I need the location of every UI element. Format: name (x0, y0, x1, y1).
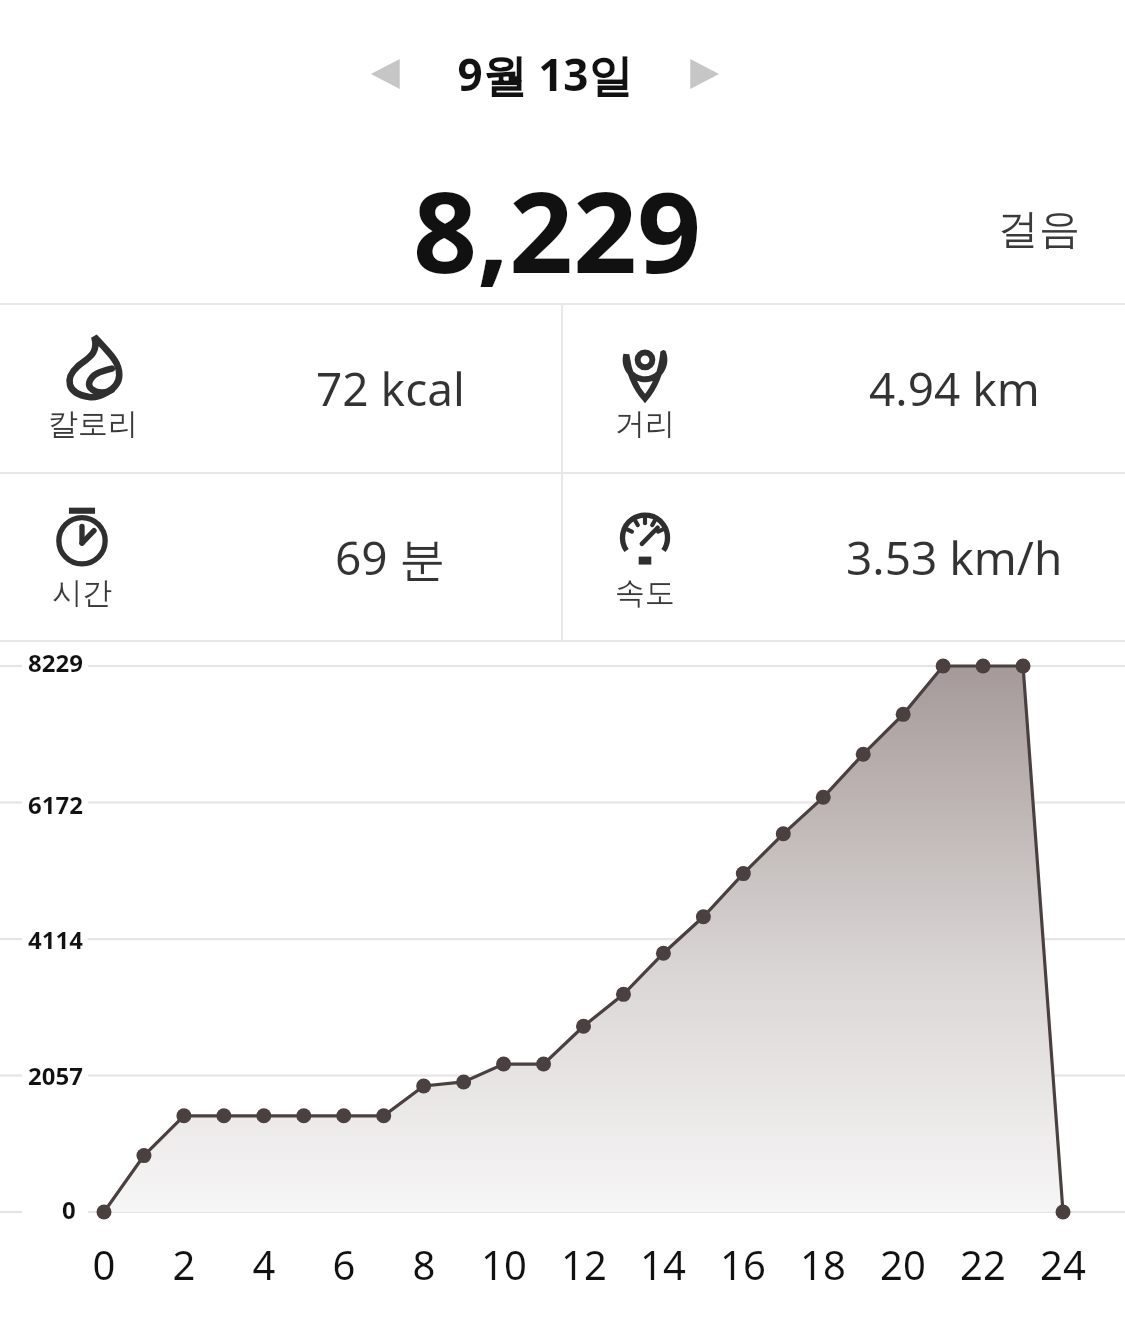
staticText: 4.94 km (869, 357, 1040, 420)
staticText: 칼로리 (48, 405, 138, 443)
staticText: 거리 (615, 405, 675, 443)
staticText: 10 (480, 1237, 528, 1291)
staticText: 8,229 (413, 153, 702, 306)
staticText: 9월 13일 (430, 44, 660, 104)
button[interactable]: 시간 (0, 474, 561, 640)
staticText: 속도 (615, 574, 675, 612)
button[interactable]: 8,229 (0, 148, 1125, 303)
staticText: 시간 (52, 574, 112, 612)
staticText: 69 분 (335, 526, 446, 589)
button[interactable]: 거리 (563, 305, 1125, 472)
staticText: 20 (879, 1237, 927, 1291)
staticText: 24 (1039, 1237, 1087, 1291)
staticText: 18 (799, 1237, 847, 1291)
button[interactable]: Next day (660, 29, 750, 119)
staticText: 0 (80, 1237, 128, 1291)
button[interactable]: 속도 (563, 474, 1125, 640)
staticText: 6172 (28, 788, 83, 821)
button[interactable]: Previous day (340, 29, 430, 119)
staticText: 72 kcal (316, 357, 465, 420)
staticText: 8 (400, 1237, 448, 1291)
staticText: 4114 (28, 923, 83, 956)
staticText: 16 (719, 1237, 767, 1291)
staticText: 2057 (28, 1059, 83, 1092)
staticText: 2 (160, 1237, 208, 1291)
staticText: 4 (240, 1237, 288, 1291)
staticText: 22 (959, 1237, 1007, 1291)
staticText: 3.53 km/h (846, 526, 1063, 589)
staticText: 걸음 (998, 204, 1080, 256)
staticText: 8229 (28, 646, 83, 679)
staticText: 6 (320, 1237, 368, 1291)
staticText: 0 (62, 1193, 76, 1226)
staticText: 12 (560, 1237, 608, 1291)
staticText: 14 (639, 1237, 687, 1291)
button[interactable]: 칼로리 (0, 305, 561, 472)
